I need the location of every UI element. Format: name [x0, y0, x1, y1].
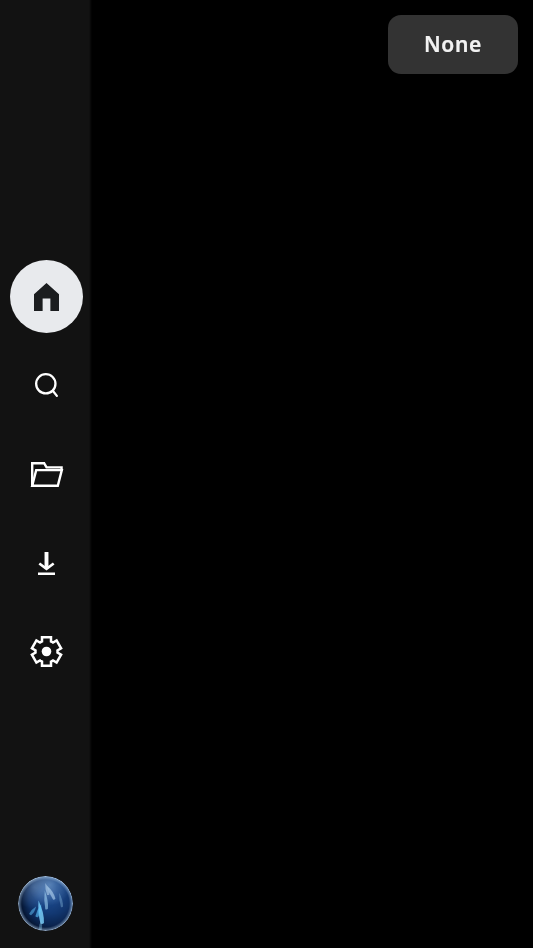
button[interactable]: Home — [10, 260, 83, 333]
button[interactable]: Settings — [10, 615, 83, 688]
button[interactable]: Downloads — [10, 527, 83, 600]
staticText: None — [424, 30, 483, 59]
button[interactable]: Search — [10, 348, 83, 421]
button[interactable]: Files — [10, 438, 83, 511]
button[interactable]: Profile — [18, 876, 73, 931]
button[interactable]: None — [388, 15, 518, 74]
